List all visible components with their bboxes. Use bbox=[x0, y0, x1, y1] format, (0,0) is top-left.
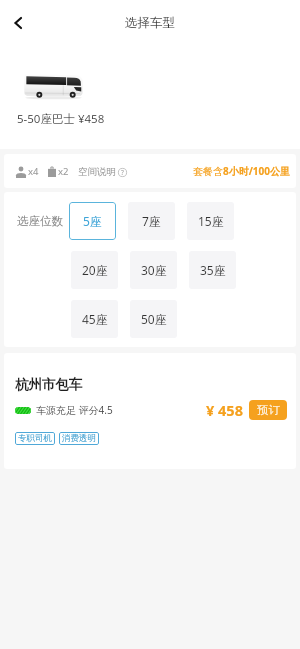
staticText: 20座 bbox=[82, 262, 108, 278]
staticText: x2 bbox=[58, 165, 69, 178]
button[interactable]: 35座 bbox=[189, 251, 236, 289]
staticText: 专职司机 bbox=[18, 433, 52, 444]
staticText: 45座 bbox=[82, 311, 108, 327]
staticText: 50座 bbox=[141, 311, 167, 327]
button[interactable]: 消费透明 bbox=[59, 432, 99, 445]
staticText: 5座 bbox=[83, 213, 102, 229]
staticText: 杭州市包车 bbox=[15, 376, 83, 393]
button[interactable]: 30座 bbox=[130, 251, 177, 289]
staticText: 选择车型 bbox=[125, 15, 175, 31]
button[interactable]: 专职司机 bbox=[15, 432, 55, 445]
staticText: 套餐含 bbox=[193, 165, 223, 178]
staticText: 消费透明 bbox=[62, 433, 96, 444]
staticText: 35座 bbox=[200, 262, 226, 278]
staticText: 5-50座巴士 ¥458 bbox=[17, 111, 105, 127]
button[interactable]: 45座 bbox=[71, 300, 118, 338]
button[interactable]: 杭州市包车 bbox=[4, 353, 296, 469]
staticText: 15座 bbox=[198, 213, 224, 229]
button[interactable]: 15座 bbox=[187, 202, 234, 240]
staticText: ? bbox=[121, 168, 124, 177]
button[interactable]: 空间说明 bbox=[78, 166, 127, 178]
staticText: 车源充足 评分4.5 bbox=[36, 403, 113, 417]
button[interactable]: 5座 bbox=[69, 202, 116, 240]
button[interactable]: 50座 bbox=[130, 300, 177, 338]
button[interactable]: 预订 bbox=[249, 400, 287, 420]
staticText: 7座 bbox=[142, 213, 161, 229]
staticText: 8小时/100公里 bbox=[223, 164, 291, 178]
staticText: 30座 bbox=[141, 262, 167, 278]
staticText: 空间说明 bbox=[78, 166, 116, 178]
staticText: x4 bbox=[28, 165, 39, 178]
button[interactable]: 20座 bbox=[71, 251, 118, 289]
button[interactable]: Back bbox=[1, 6, 35, 40]
staticText: ¥ 458 bbox=[206, 400, 243, 420]
staticText: 预订 bbox=[257, 403, 280, 417]
staticText: 选座位数 bbox=[17, 214, 63, 228]
button[interactable]: 7座 bbox=[128, 202, 175, 240]
